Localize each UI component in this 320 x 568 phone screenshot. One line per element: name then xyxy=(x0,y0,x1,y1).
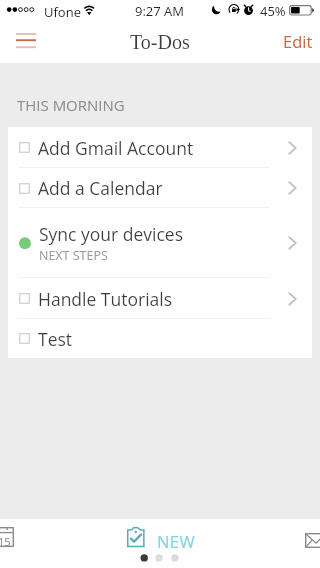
staticText: Handle Tutorials xyxy=(38,287,173,311)
staticText: 9:27 AM xyxy=(135,2,185,20)
button[interactable]: Mail xyxy=(305,533,320,548)
button[interactable]: NEW xyxy=(127,527,196,549)
button[interactable]: Add a Calendar xyxy=(8,168,312,208)
staticText: 45% xyxy=(260,2,286,20)
staticText: THIS MORNING xyxy=(17,95,125,115)
button[interactable]: Sync your devices xyxy=(8,208,312,278)
button[interactable]: Test xyxy=(8,319,312,358)
staticText: Test xyxy=(38,327,73,351)
staticText: NEW xyxy=(157,530,196,552)
button[interactable]: Calendar xyxy=(0,527,14,547)
staticText: NEXT STEPS xyxy=(39,247,108,264)
button[interactable]: Handle Tutorials xyxy=(8,278,312,319)
staticText: Add Gmail Account xyxy=(38,136,194,160)
staticText: To-Dos xyxy=(130,31,190,53)
staticText: 15 xyxy=(0,534,11,549)
staticText: Edit xyxy=(283,30,313,52)
button[interactable]: Menu xyxy=(0,20,45,63)
button[interactable]: Add Gmail Account xyxy=(8,127,312,168)
staticText: Add a Calendar xyxy=(38,176,163,200)
staticText: Ufone xyxy=(44,3,81,21)
button[interactable]: Edit xyxy=(276,22,320,60)
staticText: Sync your devices xyxy=(39,222,183,246)
